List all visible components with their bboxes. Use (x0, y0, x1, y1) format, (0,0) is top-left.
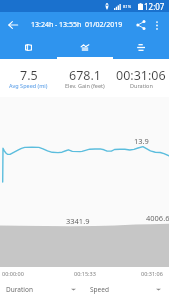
staticText: Avg Speed (mi) (9, 82, 48, 89)
staticText: 00:31:06 (141, 270, 163, 277)
staticText: Elev. Gain (feet) (65, 82, 105, 89)
staticText: 00:15:33 (74, 270, 96, 277)
button[interactable]: Duration (0, 280, 84, 298)
staticText: 81% (123, 4, 132, 10)
staticText: 00:00:00 (2, 270, 24, 277)
staticText: 4006.6 (146, 213, 169, 223)
button[interactable]: 678.1 (57, 59, 113, 97)
staticText: 678.1 (69, 67, 101, 84)
staticText: Duration (130, 82, 153, 89)
button[interactable]: Share (133, 14, 148, 36)
staticText: Speed (90, 285, 109, 294)
button[interactable]: Map tab (0, 38, 57, 59)
button[interactable]: 00:31:06 (113, 59, 169, 97)
staticText: 00:31:06 (116, 67, 166, 84)
button[interactable]: List tab (113, 38, 169, 59)
button[interactable]: 7.5 (0, 59, 57, 97)
staticText: 7.5 (20, 67, 38, 84)
button[interactable]: Chart tab (57, 38, 113, 59)
staticText: 3341.9 (66, 216, 90, 226)
button[interactable]: More options (148, 14, 165, 36)
staticText: 12:07 (144, 1, 165, 12)
staticText: 13.9 (134, 136, 149, 146)
staticText: Duration (6, 285, 33, 294)
staticText: 13:24h - 13:55h 01/02/2019 (31, 20, 123, 30)
button[interactable]: Back (0, 12, 26, 38)
button[interactable]: Speed (84, 280, 169, 298)
